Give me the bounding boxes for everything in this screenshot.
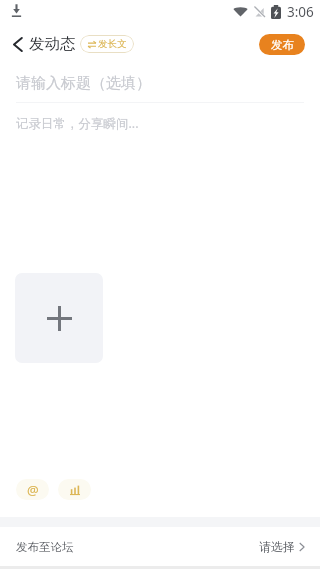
button[interactable]: Back: [0, 24, 38, 64]
staticText: 请输入标题（选填）: [16, 74, 151, 93]
staticText: 请选择: [259, 539, 295, 554]
button[interactable]: Add photo: [15, 273, 103, 363]
button[interactable]: 发长文: [80, 35, 134, 53]
staticText: 记录日常，分享瞬间...: [16, 115, 139, 132]
button[interactable]: 发布: [259, 34, 305, 55]
staticText: 发动态: [29, 34, 76, 54]
button[interactable]: 发布至论坛: [0, 527, 320, 566]
staticText: 发布至论坛: [16, 540, 74, 554]
staticText: 发布: [271, 38, 294, 52]
staticText: 发长文: [98, 38, 127, 50]
button[interactable]: Vote: [58, 479, 91, 500]
staticText: @: [27, 481, 39, 499]
staticText: 3:06: [287, 3, 314, 21]
button[interactable]: Mention: [16, 479, 49, 500]
